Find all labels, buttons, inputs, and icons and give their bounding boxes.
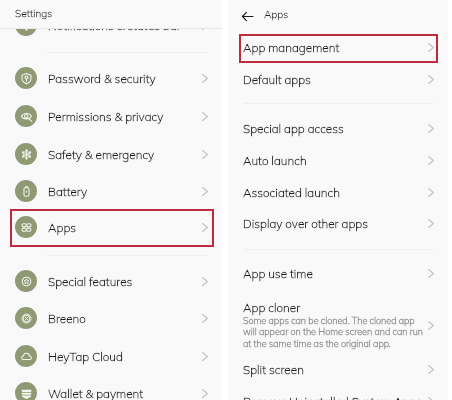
staticText: Apps [48, 220, 202, 235]
staticText: Remove Uninstalled System Apps [243, 394, 422, 400]
staticText: Notifications & status bar [48, 18, 202, 33]
button[interactable]: Password & security [0, 59, 222, 97]
staticText: Permissions & privacy [48, 109, 202, 124]
staticText: Settings [15, 7, 53, 20]
staticText: Some apps can be cloned. The cloned app … [243, 315, 428, 350]
staticText: Display over other apps [243, 216, 368, 231]
staticText: App cloner [243, 300, 301, 315]
staticText: Special app access [243, 121, 344, 136]
button[interactable]: Apps [0, 208, 222, 246]
button[interactable]: Notifications & status bar [0, 6, 222, 44]
button[interactable]: App use time [228, 258, 448, 288]
staticText: HeyTap Cloud [48, 349, 202, 364]
button[interactable]: Auto launch [228, 145, 448, 175]
button[interactable]: Back [237, 6, 257, 26]
staticText: Split screen [243, 362, 304, 377]
button[interactable]: Special features [0, 262, 222, 300]
staticText: Default apps [243, 72, 311, 87]
button[interactable]: App cloner [228, 293, 448, 357]
button[interactable]: Breeno [0, 299, 222, 337]
staticText: Auto launch [243, 153, 307, 168]
button[interactable]: Split screen [228, 354, 448, 384]
button[interactable]: Special app access [228, 113, 448, 143]
staticText: Battery [48, 184, 202, 199]
button[interactable]: Battery [0, 172, 222, 210]
button[interactable]: HeyTap Cloud [0, 337, 222, 375]
staticText: Safety & emergency [48, 147, 202, 162]
staticText: Breeno [48, 311, 202, 326]
button[interactable]: Permissions & privacy [0, 97, 222, 135]
staticText: Special features [48, 274, 202, 289]
staticText: Password & security [48, 71, 202, 86]
button[interactable]: App management [228, 32, 448, 62]
staticText: Wallet & payment [48, 386, 202, 400]
button[interactable]: Default apps [228, 64, 448, 94]
button[interactable]: Display over other apps [228, 208, 448, 238]
button[interactable]: Associated launch [228, 177, 448, 207]
button[interactable]: Remove Uninstalled System Apps [228, 386, 448, 400]
button[interactable]: Wallet & payment [0, 374, 222, 400]
staticText: App use time [243, 266, 313, 281]
staticText: App management [243, 40, 340, 55]
staticText: Associated launch [243, 185, 341, 200]
staticText: Apps [264, 8, 289, 21]
button[interactable]: Safety & emergency [0, 135, 222, 173]
